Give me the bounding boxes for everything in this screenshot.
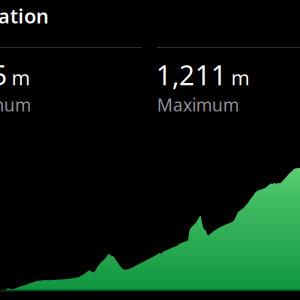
staticText: m xyxy=(231,64,250,91)
staticText: 1,235 xyxy=(0,56,7,93)
staticText: Minimum xyxy=(0,93,31,117)
staticText: Elevation xyxy=(0,2,49,29)
staticText: 1,211 xyxy=(156,56,227,93)
staticText: m xyxy=(11,64,30,91)
staticText: Maximum xyxy=(157,93,239,117)
